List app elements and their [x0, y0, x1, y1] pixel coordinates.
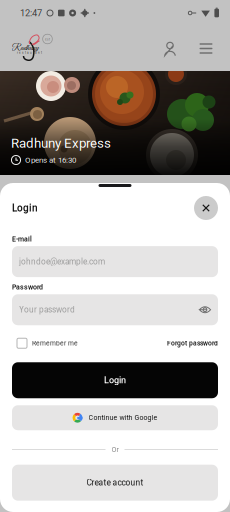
staticText: r e s t a u r a n t	[17, 51, 42, 54]
staticText: Radhuny Express	[11, 135, 111, 151]
staticText: Or	[111, 445, 118, 454]
button[interactable]: Menu	[193, 35, 219, 61]
button[interactable]: Create account	[12, 465, 218, 501]
staticText: 12:47	[20, 7, 42, 18]
button[interactable]: Account	[157, 35, 183, 61]
staticText: E-mail	[12, 235, 32, 243]
staticText: johndoe@example.com	[19, 257, 105, 266]
staticText: Create account	[86, 478, 143, 488]
staticText: Forgot password	[167, 339, 218, 347]
staticText: Password	[12, 283, 43, 291]
staticText: Login	[104, 375, 126, 385]
button[interactable]: Forgot password	[167, 339, 218, 347]
staticText: est	[45, 37, 50, 41]
button[interactable]: Continue with Google	[12, 405, 218, 430]
staticText: Login	[12, 202, 38, 214]
staticText: Opens at 16:30	[25, 155, 76, 165]
staticText: Continue with Google	[88, 414, 157, 422]
staticText: Radhuny	[11, 42, 38, 53]
button[interactable]: Login	[12, 362, 218, 398]
button[interactable]: Close	[194, 196, 218, 220]
staticText: Your password	[19, 305, 75, 315]
button[interactable]: Remember me	[12, 338, 78, 348]
staticText: Remember me	[32, 339, 78, 347]
